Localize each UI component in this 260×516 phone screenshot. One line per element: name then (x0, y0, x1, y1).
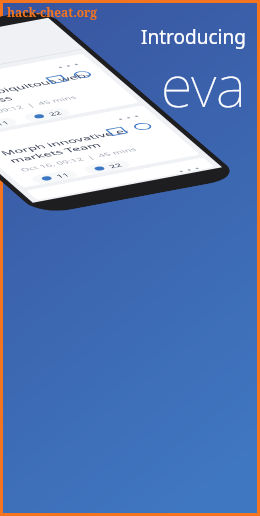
staticText: Introducing (141, 24, 246, 50)
staticText: 22 (106, 162, 124, 169)
staticText: • • • (46, 164, 201, 197)
staticText: Exploit ubiquitous web-readiness (0, 70, 103, 112)
button[interactable]: • • • (26, 157, 215, 200)
staticText: • • • (0, 61, 82, 95)
staticText: 11 (54, 172, 71, 179)
staticText: Oct 16, 09:12 | 45 mins (18, 146, 139, 173)
staticText: • • • (0, 112, 143, 147)
staticText: Oct 16, 09:12 | 45 mins (0, 94, 78, 120)
button[interactable]: • • • (0, 53, 140, 135)
button[interactable]: • • • (0, 105, 200, 188)
staticText: eva (161, 45, 246, 124)
staticText: 22 (46, 110, 64, 117)
staticText: 11 (0, 119, 11, 127)
staticText: hack-cheat.org (7, 4, 98, 20)
staticText: Morph innovative e-markets Team (0, 122, 163, 165)
